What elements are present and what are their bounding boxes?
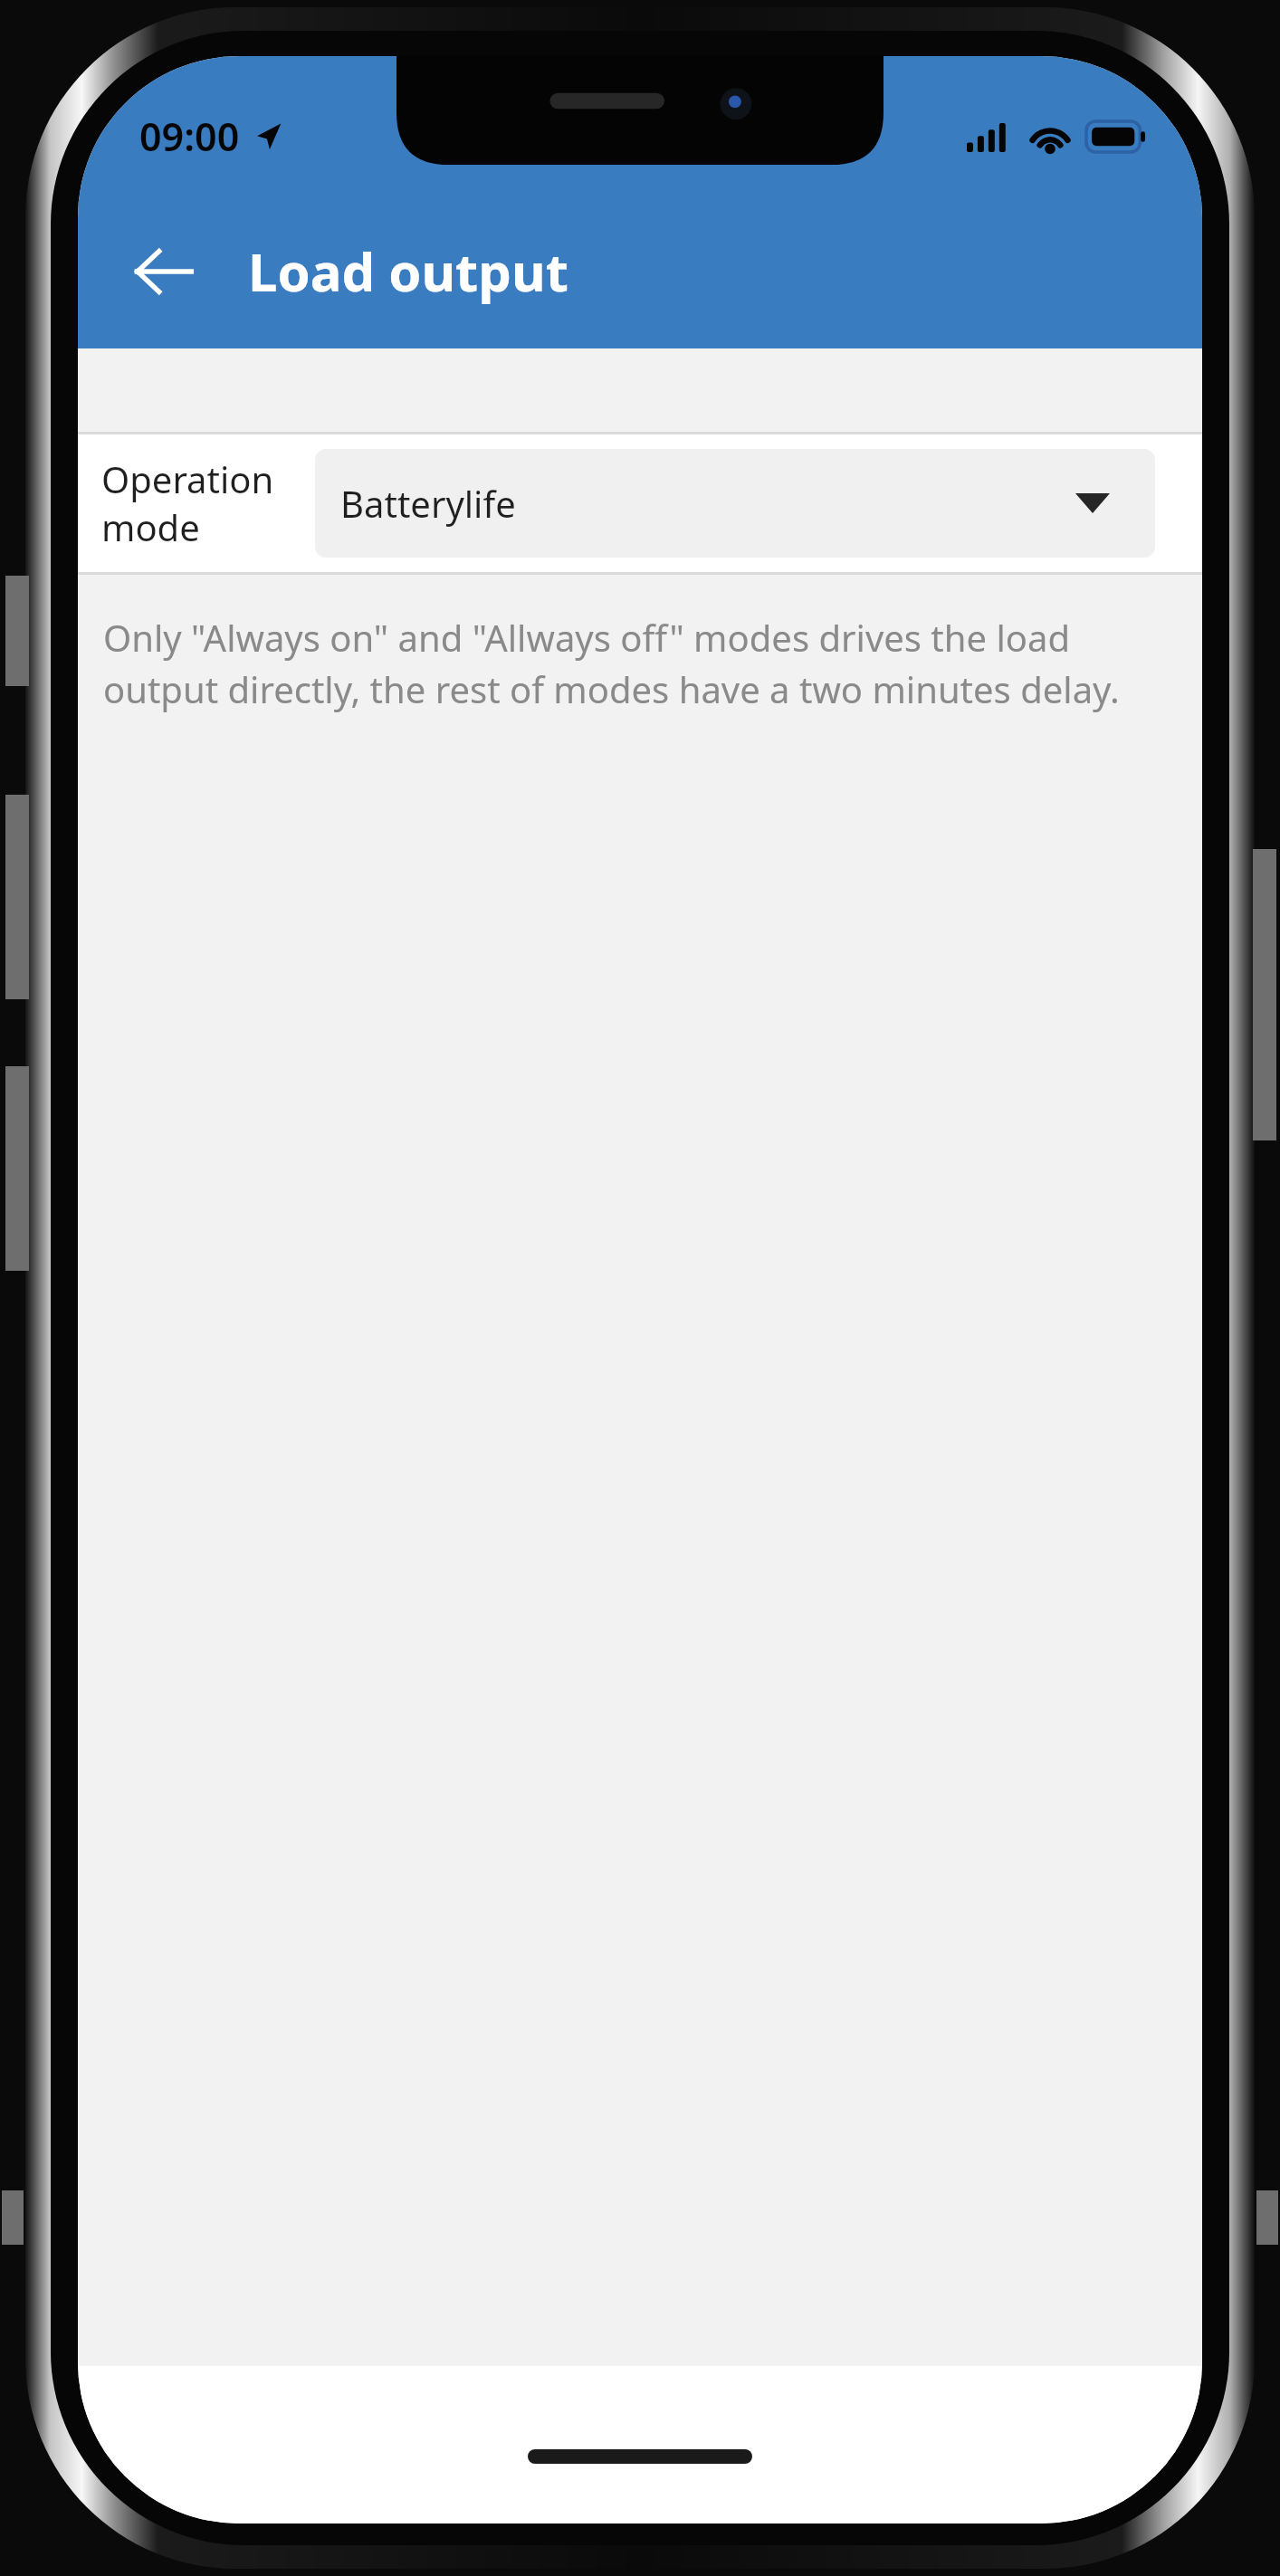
staticText: Load output — [248, 235, 568, 307]
staticText: Only "Always on" and "Allways off" modes… — [103, 613, 1148, 713]
staticText: 09:00 — [139, 110, 240, 163]
button[interactable]: Batterylife — [315, 449, 1155, 558]
staticText: Operation mode — [101, 454, 315, 552]
button[interactable]: Operation mode — [78, 434, 1202, 572]
staticText: Batterylife — [340, 479, 516, 528]
button[interactable]: Back — [105, 213, 223, 330]
